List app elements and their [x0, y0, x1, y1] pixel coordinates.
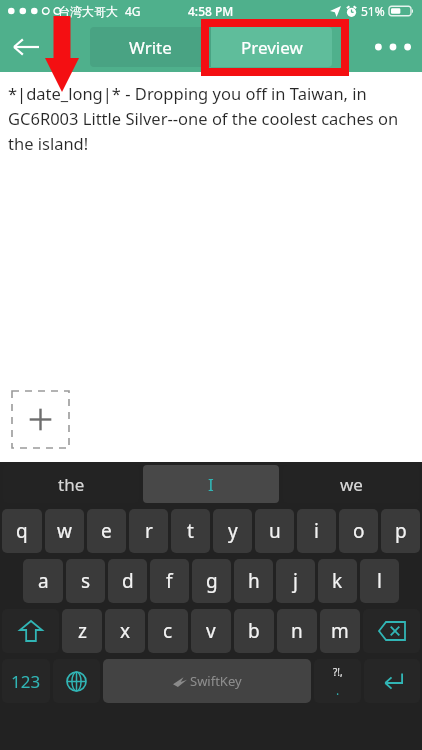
staticText: e	[101, 518, 112, 544]
staticText: Write	[129, 36, 172, 59]
button[interactable]: e	[87, 509, 126, 553]
staticText: f	[166, 568, 173, 594]
staticText: 台湾大哥大	[58, 4, 118, 19]
button[interactable]: j	[276, 559, 315, 603]
button[interactable]: l	[360, 559, 399, 603]
button[interactable]: f	[150, 559, 189, 603]
button[interactable]: More options	[364, 22, 422, 72]
staticText: a	[38, 568, 49, 594]
button[interactable]: v	[191, 609, 231, 653]
staticText: SwiftKey	[190, 672, 242, 690]
button[interactable]: p	[381, 509, 420, 553]
staticText: ?!,	[333, 665, 343, 679]
staticText: 123	[11, 670, 41, 693]
staticText: the	[58, 473, 85, 496]
staticText: i	[314, 518, 319, 544]
button[interactable]: Backspace	[363, 609, 420, 653]
staticText: l	[377, 568, 382, 594]
staticText: r	[145, 518, 153, 544]
button[interactable]: the	[3, 465, 139, 503]
button[interactable]: x	[105, 609, 145, 653]
button[interactable]: k	[318, 559, 357, 603]
button[interactable]: n	[277, 609, 317, 653]
staticText: g	[206, 568, 218, 594]
staticText: m	[331, 618, 349, 644]
button[interactable]: Add photo	[12, 391, 69, 448]
staticText: u	[269, 518, 281, 544]
staticText: n	[291, 618, 303, 644]
staticText: o	[353, 518, 365, 544]
staticText: 51%	[361, 3, 385, 19]
staticText: p	[395, 518, 407, 544]
button[interactable]: q	[2, 509, 42, 553]
button[interactable]: Shift	[2, 609, 59, 653]
button[interactable]: y	[213, 509, 252, 553]
staticText: v	[206, 618, 216, 644]
staticText: Preview	[241, 36, 303, 59]
button[interactable]: 123	[2, 659, 50, 703]
button[interactable]: b	[234, 609, 274, 653]
button[interactable]: h	[234, 559, 273, 603]
staticText: b	[248, 618, 260, 644]
staticText: j	[293, 568, 298, 594]
staticText: y	[228, 518, 238, 544]
staticText: .	[336, 682, 340, 698]
staticText: q	[16, 518, 28, 544]
staticText: z	[78, 618, 87, 644]
staticText: I	[208, 473, 214, 496]
button[interactable]: a	[23, 559, 63, 603]
button[interactable]: u	[255, 509, 294, 553]
button[interactable]: m	[320, 609, 360, 653]
button[interactable]: Enter	[364, 659, 420, 703]
staticText: 4G	[125, 3, 141, 19]
staticText: t	[187, 518, 194, 544]
staticText: k	[332, 568, 343, 594]
staticText: 4:58 PM	[188, 3, 234, 19]
button[interactable]: z	[62, 609, 102, 653]
button[interactable]: I	[143, 465, 279, 503]
button[interactable]: Space	[103, 659, 311, 703]
staticText: w	[57, 518, 72, 544]
button[interactable]: o	[339, 509, 378, 553]
staticText: s	[81, 568, 91, 594]
staticText: *|date_long|* - Dropping you off in Taiw…	[8, 82, 414, 154]
button[interactable]: Preview	[211, 27, 332, 67]
button[interactable]: w	[45, 509, 84, 553]
button[interactable]: t	[171, 509, 210, 553]
button[interactable]: Back	[0, 22, 52, 72]
button[interactable]: g	[192, 559, 231, 603]
staticText: h	[248, 568, 260, 594]
button[interactable]: ?!,	[314, 659, 361, 703]
staticText: x	[120, 618, 131, 644]
staticText: we	[340, 473, 363, 496]
button[interactable]: s	[66, 559, 105, 603]
button[interactable]: Change language	[53, 659, 100, 703]
button[interactable]: r	[129, 509, 168, 553]
button[interactable]: Write	[90, 27, 211, 67]
staticText: c	[163, 618, 173, 644]
button[interactable]: d	[108, 559, 147, 603]
button[interactable]: c	[148, 609, 188, 653]
staticText: d	[122, 568, 134, 594]
button[interactable]: i	[297, 509, 336, 553]
button[interactable]: we	[283, 465, 419, 503]
